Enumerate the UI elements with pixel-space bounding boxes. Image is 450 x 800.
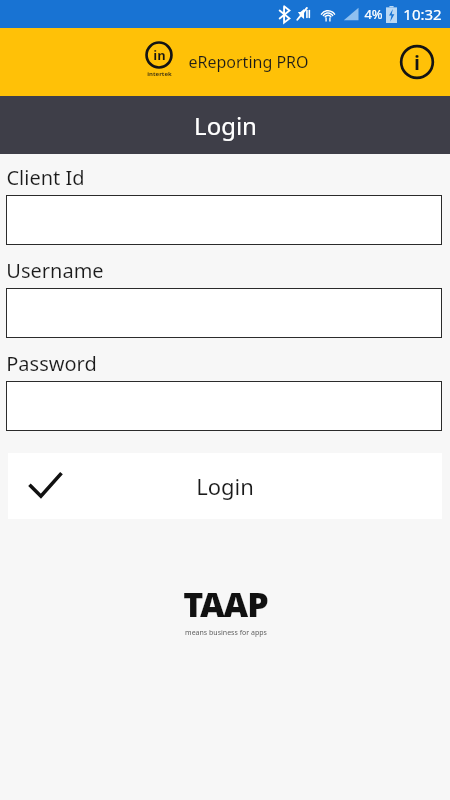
staticText: Login	[194, 109, 257, 142]
staticText: intertek	[147, 70, 172, 78]
staticText: in	[153, 46, 166, 64]
button[interactable]	[6, 195, 442, 245]
staticText: eReporting PRO	[188, 51, 309, 73]
staticText: means business for apps	[185, 628, 267, 638]
staticText: TAAP	[183, 581, 268, 627]
staticText: Client Id	[6, 164, 85, 191]
button[interactable]: Login	[8, 453, 442, 519]
button[interactable]: Information	[394, 39, 440, 85]
staticText: 10:32	[403, 4, 442, 24]
staticText: 4%	[364, 5, 383, 23]
staticText: Login	[196, 471, 254, 501]
staticText: Username	[6, 257, 104, 284]
button[interactable]	[6, 288, 442, 338]
button[interactable]	[6, 381, 442, 431]
staticText: i	[414, 49, 420, 76]
staticText: Password	[6, 350, 97, 377]
